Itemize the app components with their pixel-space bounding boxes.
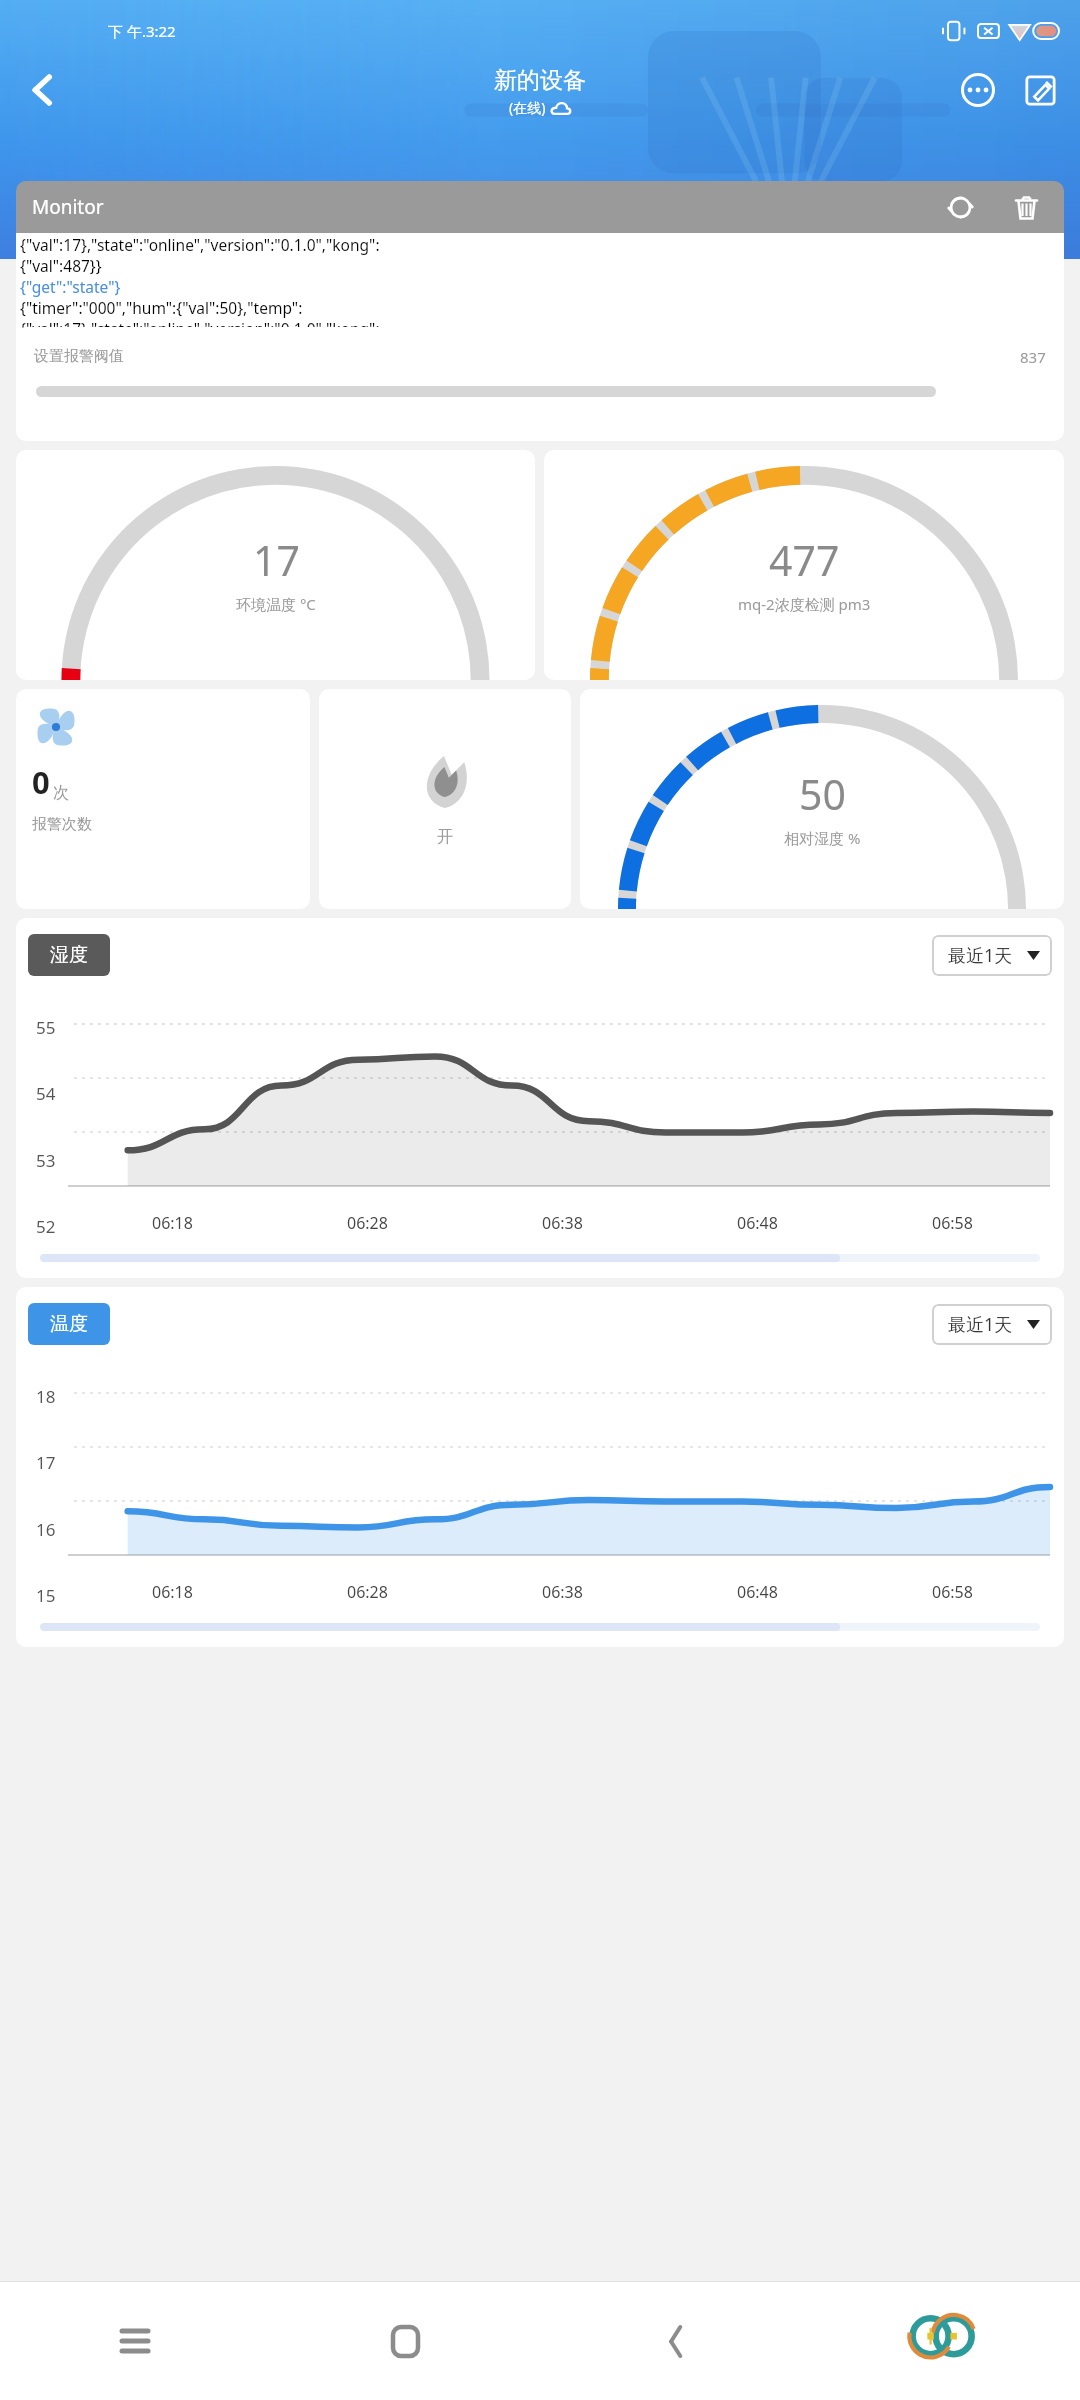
- staticText: 06:28: [347, 1581, 388, 1603]
- button[interactable]: Edit: [1012, 62, 1068, 118]
- staticText: 湿度: [50, 943, 88, 967]
- button[interactable]: 0: [16, 689, 310, 909]
- staticText: 相对湿度 %: [784, 828, 861, 848]
- staticText: 53: [36, 1149, 56, 1172]
- staticText: 环境温度 °C: [236, 594, 316, 614]
- staticText: 477: [769, 532, 840, 588]
- staticText: 55: [36, 1016, 56, 1039]
- button[interactable]: Refresh: [938, 185, 982, 229]
- staticText: {"val":487}}: [20, 255, 102, 276]
- staticText: 18: [36, 1385, 56, 1408]
- staticText: 报警次数: [32, 815, 92, 834]
- staticText: {"val":477}}: [20, 339, 102, 360]
- button[interactable]: Back: [540, 2282, 810, 2400]
- button[interactable]: 17: [16, 450, 535, 680]
- staticText: 17: [36, 1451, 56, 1474]
- staticText: 15: [36, 1584, 56, 1607]
- button[interactable]: Delete: [1004, 185, 1048, 229]
- button[interactable]: 477: [544, 450, 1064, 680]
- staticText: 54: [36, 1082, 56, 1105]
- staticText: {"timer":"000","hum":{"val":50},"temp":: [20, 297, 303, 318]
- button[interactable]: 湿度: [28, 934, 110, 976]
- staticText: 次: [53, 783, 69, 803]
- staticText: 50: [799, 766, 846, 822]
- staticText: 新的设备: [494, 66, 586, 95]
- button[interactable]: 开: [319, 689, 571, 909]
- staticText: 17: [253, 532, 300, 588]
- staticText: 06:18: [152, 1212, 193, 1234]
- staticText: (在线): [509, 98, 546, 117]
- staticText: 06:38: [542, 1212, 583, 1234]
- button[interactable]: 最近1天: [932, 935, 1052, 976]
- staticText: 06:58: [932, 1212, 973, 1234]
- staticText: 0: [32, 761, 50, 803]
- staticText: mq-2浓度检测 pm3: [738, 594, 871, 614]
- staticText: Monitor: [32, 194, 104, 220]
- staticText: 最近1天: [948, 943, 1013, 968]
- staticText: 06:48: [737, 1212, 778, 1234]
- staticText: 06:58: [932, 1581, 973, 1603]
- button[interactable]: More options: [950, 62, 1006, 118]
- button[interactable]: 最近1天: [932, 1304, 1052, 1345]
- staticText: 最近1天: [948, 1312, 1013, 1337]
- staticText: 06:28: [347, 1212, 388, 1234]
- staticText: {"val":17},"state":"online","version":"0…: [20, 318, 380, 339]
- button[interactable]: 50: [580, 689, 1064, 909]
- button[interactable]: 温度: [28, 1303, 110, 1345]
- staticText: 06:18: [152, 1581, 193, 1603]
- staticText: {"val":17},"state":"online","version":"0…: [20, 234, 380, 255]
- staticText: 温度: [50, 1312, 88, 1336]
- staticText: 开: [437, 827, 453, 847]
- button[interactable]: 设置报警阀值: [16, 327, 1064, 441]
- staticText: {"get":"state"}: [20, 276, 121, 297]
- staticText: 06:48: [737, 1581, 778, 1603]
- button[interactable]: Menu: [0, 2282, 270, 2400]
- staticText: 837: [1020, 347, 1046, 367]
- staticText: 设置报警阀值: [34, 347, 124, 366]
- staticText: 下 午.3:22: [108, 21, 176, 41]
- button[interactable]: Home: [270, 2282, 540, 2400]
- staticText: 06:38: [542, 1581, 583, 1603]
- staticText: 52: [36, 1215, 56, 1238]
- staticText: 16: [36, 1518, 56, 1541]
- button[interactable]: Back: [14, 62, 70, 118]
